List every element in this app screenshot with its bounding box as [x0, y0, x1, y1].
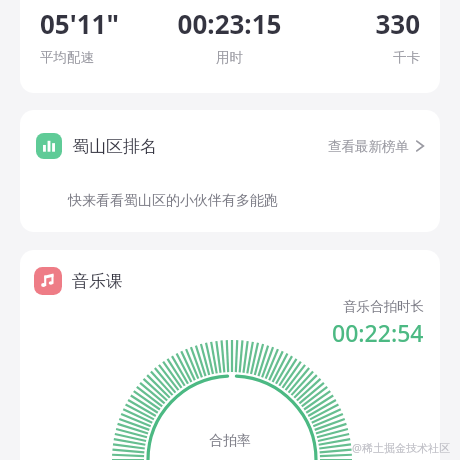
staticText: 音乐课	[72, 271, 123, 292]
staticText: 快来看看蜀山区的小伙伴有多能跑	[68, 192, 278, 210]
staticText: 330	[293, 6, 420, 41]
staticText: 05'11"	[40, 6, 166, 41]
staticText: 合拍率	[20, 432, 440, 450]
staticText: 音乐合拍时长	[343, 298, 424, 315]
staticText: 00:22:54	[332, 317, 424, 348]
staticText: 平均配速	[40, 49, 166, 66]
other: 音乐课	[34, 267, 62, 295]
staticText: 00:23:15	[166, 6, 293, 41]
staticText: 千卡	[293, 49, 420, 66]
staticText: @稀土掘金技术社区	[352, 440, 450, 455]
staticText: 蜀山区排名	[72, 136, 157, 157]
other: 排名	[36, 133, 62, 159]
button[interactable]: 排名	[20, 110, 440, 232]
staticText: 用时	[166, 49, 293, 66]
other: 查看最新榜单	[416, 139, 424, 153]
staticText: 查看最新榜单	[328, 138, 409, 155]
